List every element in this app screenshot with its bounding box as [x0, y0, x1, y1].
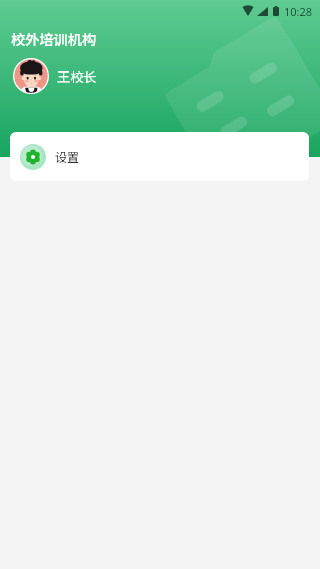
button[interactable]: 设置 — [10, 132, 309, 181]
other: Battery — [273, 6, 279, 16]
staticText: 校外培训机构 — [11, 29, 97, 50]
staticText: 王校长 — [57, 67, 97, 86]
staticText: 设置 — [55, 148, 80, 165]
other: Wi-Fi — [242, 7, 254, 16]
other: Mobile signal — [257, 7, 268, 16]
staticText: 10:28 — [284, 4, 313, 19]
